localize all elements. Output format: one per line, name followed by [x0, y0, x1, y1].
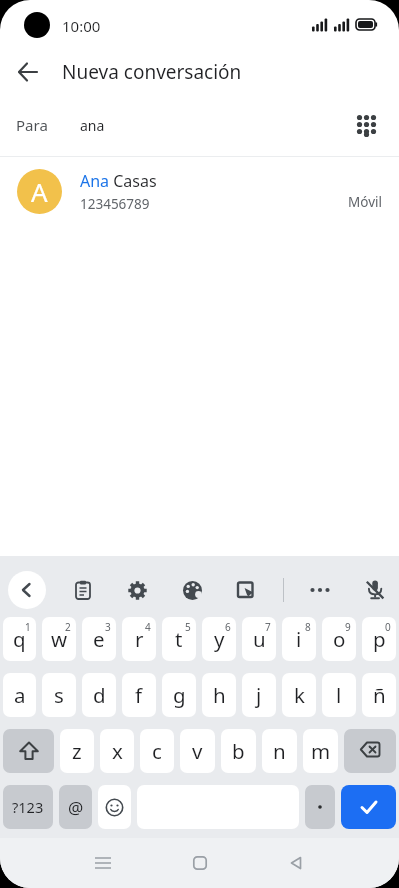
staticText: x [112, 737, 123, 765]
staticText: j [256, 681, 262, 709]
button[interactable] [344, 729, 396, 773]
staticText: ana [80, 116, 105, 135]
button[interactable]: Para [0, 94, 399, 156]
staticText: i [296, 625, 302, 653]
button[interactable]: s [42, 673, 76, 717]
staticText: y [214, 625, 225, 653]
staticText: Para [16, 115, 48, 135]
button[interactable]: o [322, 617, 356, 661]
button[interactable] [341, 785, 396, 829]
button[interactable] [302, 572, 338, 608]
button[interactable]: r [122, 617, 156, 661]
button[interactable] [347, 105, 387, 145]
staticText: z [72, 737, 82, 765]
staticText: h [213, 681, 226, 709]
staticText: k [294, 681, 305, 709]
staticText: o [333, 625, 346, 653]
staticText: t [175, 625, 183, 653]
button[interactable]: @ [59, 785, 92, 829]
staticText: A [31, 174, 48, 209]
button[interactable]: h [202, 673, 236, 717]
staticText: b [232, 737, 245, 765]
button[interactable]: c [140, 729, 174, 773]
button[interactable] [305, 785, 335, 829]
button[interactable]: A [0, 157, 399, 225]
button[interactable]: n [262, 729, 297, 773]
staticText: r [135, 625, 144, 653]
button[interactable]: ñ [362, 673, 396, 717]
staticText: d [93, 681, 106, 709]
button[interactable]: z [60, 729, 94, 773]
button[interactable] [65, 572, 101, 608]
staticText: Móvil [348, 193, 382, 211]
staticText: p [373, 625, 386, 653]
button[interactable]: a [3, 673, 36, 717]
button[interactable]: u [242, 617, 276, 661]
staticText: a [14, 681, 26, 709]
button[interactable]: x [100, 729, 134, 773]
button[interactable] [228, 572, 264, 608]
staticText: @ [68, 796, 84, 819]
staticText: Nueva conversación [62, 59, 242, 85]
staticText: w [51, 625, 68, 653]
button[interactable]: j [242, 673, 276, 717]
staticText: Ana Casas [80, 170, 157, 192]
button[interactable]: p [362, 617, 396, 661]
button[interactable]: y [202, 617, 236, 661]
button[interactable]: g [162, 673, 196, 717]
button[interactable] [98, 785, 131, 829]
staticText: ?123 [12, 797, 44, 817]
staticText: e [93, 625, 105, 653]
button[interactable]: w [42, 617, 76, 661]
staticText: 8 [305, 620, 311, 634]
button[interactable] [185, 848, 215, 878]
staticText: g [173, 681, 186, 709]
button[interactable] [88, 848, 118, 878]
button[interactable] [8, 571, 46, 609]
staticText: c [152, 737, 162, 765]
button[interactable] [0, 50, 56, 94]
button[interactable]: e [82, 617, 116, 661]
staticText: l [336, 681, 342, 709]
button[interactable]: t [162, 617, 196, 661]
staticText: 5 [185, 620, 191, 634]
staticText: q [13, 625, 26, 653]
button[interactable]: v [180, 729, 215, 773]
button[interactable]: d [82, 673, 116, 717]
staticText: f [135, 681, 143, 709]
staticText: 6 [225, 620, 231, 634]
button[interactable]: f [122, 673, 156, 717]
staticText: ñ [373, 681, 386, 709]
button[interactable] [174, 572, 210, 608]
staticText: 123456789 [80, 195, 150, 213]
staticText: n [273, 737, 286, 765]
button[interactable]: ?123 [3, 785, 53, 829]
staticText: 3 [105, 620, 111, 634]
staticText: m [311, 737, 331, 765]
button[interactable]: q [3, 617, 36, 661]
button[interactable]: k [282, 673, 316, 717]
staticText: 10:00 [62, 16, 101, 36]
button[interactable]: i [282, 617, 316, 661]
staticText: u [253, 625, 266, 653]
staticText: 0 [385, 620, 391, 634]
button[interactable]: l [322, 673, 356, 717]
button[interactable]: m [303, 729, 338, 773]
staticText: 9 [345, 620, 351, 634]
button[interactable] [3, 729, 54, 773]
button[interactable]: b [221, 729, 256, 773]
button[interactable] [281, 848, 311, 878]
staticText: 2 [65, 620, 71, 634]
staticText: v [192, 737, 203, 765]
button[interactable] [357, 572, 393, 608]
staticText: 4 [145, 620, 151, 634]
button[interactable] [119, 572, 155, 608]
staticText: 1 [25, 620, 31, 634]
staticText: 7 [265, 620, 271, 634]
staticText: s [54, 681, 64, 709]
